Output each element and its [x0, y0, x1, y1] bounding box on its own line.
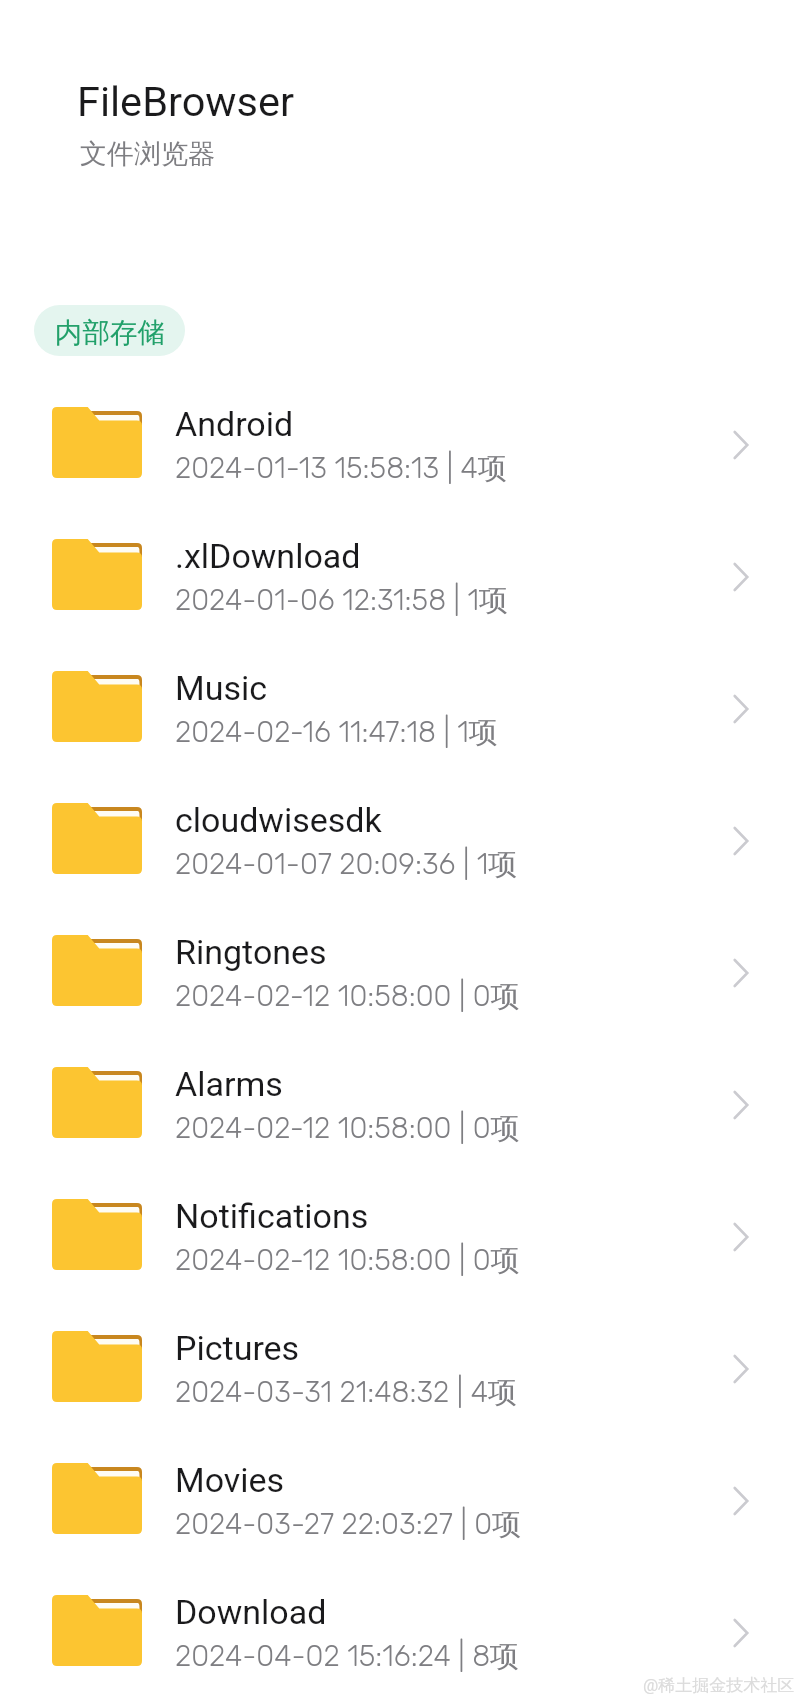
- staticText: Notifications: [175, 1196, 369, 1236]
- staticText: @稀土掘金技术社区: [643, 1675, 795, 1696]
- staticText: 2024-01-07 20:09:36 | 1项: [175, 846, 518, 883]
- button[interactable]: Notifications: [0, 1171, 800, 1303]
- staticText: 2024-02-12 10:58:00 | 0项: [175, 978, 520, 1015]
- other: Open folder: [711, 679, 771, 739]
- button[interactable]: Download: [0, 1567, 800, 1699]
- staticText: Movies: [175, 1460, 285, 1500]
- staticText: 2024-02-12 10:58:00 | 0项: [175, 1242, 520, 1279]
- staticText: Android: [175, 404, 294, 444]
- button[interactable]: Music: [0, 643, 800, 775]
- staticText: 文件浏览器: [80, 137, 215, 171]
- staticText: 2024-01-06 12:31:58 | 1项: [175, 582, 508, 619]
- staticText: 2024-03-31 21:48:32 | 4项: [175, 1374, 517, 1411]
- staticText: 2024-02-16 11:47:18 | 1项: [175, 714, 498, 751]
- other: Open folder: [711, 811, 771, 871]
- other: Open folder: [711, 1603, 771, 1663]
- staticText: Alarms: [175, 1064, 283, 1104]
- button[interactable]: Alarms: [0, 1039, 800, 1171]
- other: Open folder: [711, 1075, 771, 1135]
- button[interactable]: .xlDownload: [0, 511, 800, 643]
- other: Open folder: [711, 415, 771, 475]
- staticText: 内部存储: [55, 316, 165, 351]
- staticText: 2024-03-27 22:03:27 | 0项: [175, 1506, 522, 1543]
- staticText: 2024-01-13 15:58:13 | 4项: [175, 450, 507, 487]
- button[interactable]: 内部存储: [34, 305, 185, 356]
- staticText: 2024-02-12 10:58:00 | 0项: [175, 1110, 520, 1147]
- button[interactable]: Movies: [0, 1435, 800, 1567]
- staticText: Music: [175, 668, 268, 708]
- other: Open folder: [711, 1207, 771, 1267]
- button[interactable]: Ringtones: [0, 907, 800, 1039]
- staticText: Ringtones: [175, 932, 327, 972]
- other: Open folder: [711, 547, 771, 607]
- button[interactable]: Pictures: [0, 1303, 800, 1435]
- other: Open folder: [711, 943, 771, 1003]
- other: Open folder: [711, 1471, 771, 1531]
- button[interactable]: cloudwisesdk: [0, 775, 800, 907]
- other: Open folder: [711, 1339, 771, 1399]
- staticText: 2024-04-02 15:16:24 | 8项: [175, 1638, 520, 1675]
- staticText: .xlDownload: [175, 536, 361, 576]
- button[interactable]: Android: [0, 379, 800, 511]
- staticText: Download: [175, 1592, 327, 1632]
- staticText: Pictures: [175, 1328, 300, 1368]
- staticText: FileBrowser: [77, 77, 294, 126]
- staticText: cloudwisesdk: [175, 800, 382, 840]
